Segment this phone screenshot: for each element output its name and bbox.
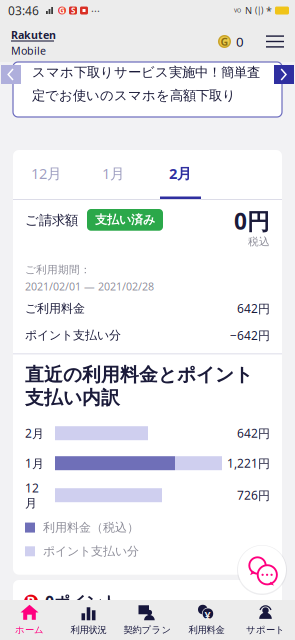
staticText: 0ポイント bbox=[45, 591, 118, 612]
staticText: 2月 bbox=[169, 163, 192, 183]
button[interactable]: ¥ bbox=[177, 599, 236, 640]
staticText: ¥ bbox=[205, 609, 211, 623]
button[interactable]: 2月 bbox=[147, 150, 214, 199]
staticText: 定でお使いのスマホを高額下取り bbox=[32, 87, 236, 104]
button[interactable]: Chat support bbox=[237, 545, 287, 595]
staticText: R bbox=[26, 593, 35, 610]
staticText: 2月 bbox=[25, 425, 44, 441]
button[interactable]: 利用状況 bbox=[59, 599, 118, 640]
staticText: ご請求額 bbox=[25, 212, 78, 228]
staticText: * bbox=[266, 3, 272, 18]
staticText: 0 bbox=[236, 33, 244, 50]
staticText: Mobile bbox=[11, 43, 46, 58]
staticText: (|) bbox=[255, 5, 263, 16]
staticText: VO bbox=[234, 7, 241, 14]
staticText: 12月 bbox=[31, 163, 62, 183]
button[interactable]: サポート bbox=[236, 599, 295, 640]
button[interactable]: Next banner bbox=[274, 65, 294, 84]
staticText: 直近の利用料金とポイント支払い内訳 bbox=[25, 363, 253, 409]
staticText: 1,221円 bbox=[227, 455, 270, 471]
button[interactable]: ホーム bbox=[0, 599, 59, 640]
staticText: 利用料金 bbox=[188, 624, 224, 636]
staticText: 利用料金（税込） bbox=[43, 520, 139, 535]
staticText: Rakuten bbox=[11, 28, 56, 42]
staticText: 契約プラン bbox=[123, 624, 171, 636]
button[interactable]: G bbox=[218, 27, 244, 56]
staticText: ご利用期間： bbox=[25, 263, 91, 276]
staticText: N bbox=[245, 4, 252, 17]
staticText: スマホ下取りサービス実施中！簡単査 bbox=[32, 64, 260, 80]
staticText: S bbox=[71, 5, 75, 16]
button[interactable]: 1月 bbox=[80, 150, 147, 199]
staticText: 0円 bbox=[234, 206, 270, 236]
staticText: −642円 bbox=[230, 327, 270, 343]
staticText: 726円 bbox=[237, 487, 270, 503]
staticText: 利用状況 bbox=[70, 624, 106, 636]
staticText: 1月 bbox=[25, 455, 44, 471]
staticText: ホーム bbox=[15, 624, 44, 636]
staticText: 1月 bbox=[102, 163, 125, 183]
button[interactable]: Menu bbox=[244, 29, 284, 54]
staticText: 2021/02/01 — 2021/02/28 bbox=[25, 279, 154, 293]
staticText: 642円 bbox=[237, 425, 270, 441]
staticText: ポイント支払い分 bbox=[43, 544, 139, 559]
staticText: 642円 bbox=[237, 300, 270, 316]
staticText: G bbox=[220, 34, 228, 49]
button[interactable]: 契約プラン bbox=[118, 599, 177, 640]
staticText: 支払い済み bbox=[95, 212, 155, 227]
staticText: ポイント支払い分 bbox=[25, 328, 121, 343]
staticText: 12月 bbox=[25, 480, 39, 511]
staticText: ··· bbox=[91, 3, 100, 18]
button[interactable]: 12月 bbox=[13, 150, 80, 199]
staticText: G bbox=[59, 5, 65, 16]
staticText: 税込 bbox=[248, 235, 270, 248]
staticText: 03:46 bbox=[8, 2, 39, 18]
staticText: ご利用料金 bbox=[25, 301, 85, 316]
button[interactable]: Previous banner bbox=[1, 65, 21, 84]
staticText: サポート bbox=[246, 624, 285, 636]
